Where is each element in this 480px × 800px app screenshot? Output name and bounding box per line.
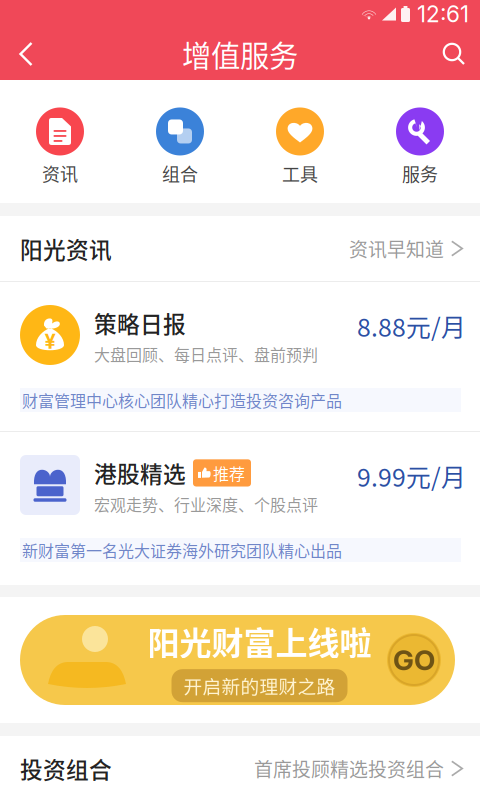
staticText: 策略日报 (94, 306, 186, 339)
button[interactable]: 阳光财富上线啦 (20, 615, 455, 705)
button[interactable]: Search (428, 28, 480, 80)
button[interactable]: 港股精选 (0, 432, 480, 585)
button[interactable]: 首席投顾精选投资组合 (254, 755, 463, 782)
button[interactable]: ¥ (0, 282, 480, 431)
staticText: 大盘回顾、每日点评、盘前预判 (94, 342, 318, 365)
button[interactable]: 工具 (240, 74, 360, 208)
staticText: 财富管理中心核心团队精心打造投资咨询产品 (22, 388, 342, 412)
staticText: 开启新的理财之路 (183, 672, 335, 699)
staticText: 港股精选 (94, 456, 186, 489)
button[interactable]: 资讯早知道 (349, 235, 463, 262)
staticText: 阳光财富上线啦 (147, 618, 371, 664)
staticText: 阳光资讯 (20, 232, 112, 265)
button[interactable]: 组合 (120, 74, 240, 208)
staticText: ¥ (44, 329, 55, 354)
staticText: 组合 (162, 160, 198, 187)
button[interactable]: Back (0, 28, 52, 80)
button[interactable]: 资讯 (0, 74, 120, 208)
staticText: GO (393, 643, 435, 677)
staticText: 12:61 (417, 0, 469, 28)
staticText: 宏观走势、行业深度、个股点评 (94, 492, 318, 515)
staticText: 服务 (402, 160, 438, 187)
staticText: 推荐 (213, 461, 245, 484)
staticText: 首席投顾精选投资组合 (254, 755, 444, 782)
button[interactable]: 服务 (360, 74, 480, 208)
staticText: 资讯早知道 (349, 235, 444, 262)
staticText: 资讯 (42, 160, 78, 187)
staticText: 增值服务 (182, 33, 298, 75)
staticText: 工具 (282, 160, 318, 187)
staticText: 新财富第一名光大证券海外研究团队精心出品 (22, 538, 342, 562)
staticText: 8.88元/月 (357, 308, 466, 344)
staticText: 投资组合 (20, 752, 112, 785)
staticText: 9.99元/月 (357, 458, 466, 494)
